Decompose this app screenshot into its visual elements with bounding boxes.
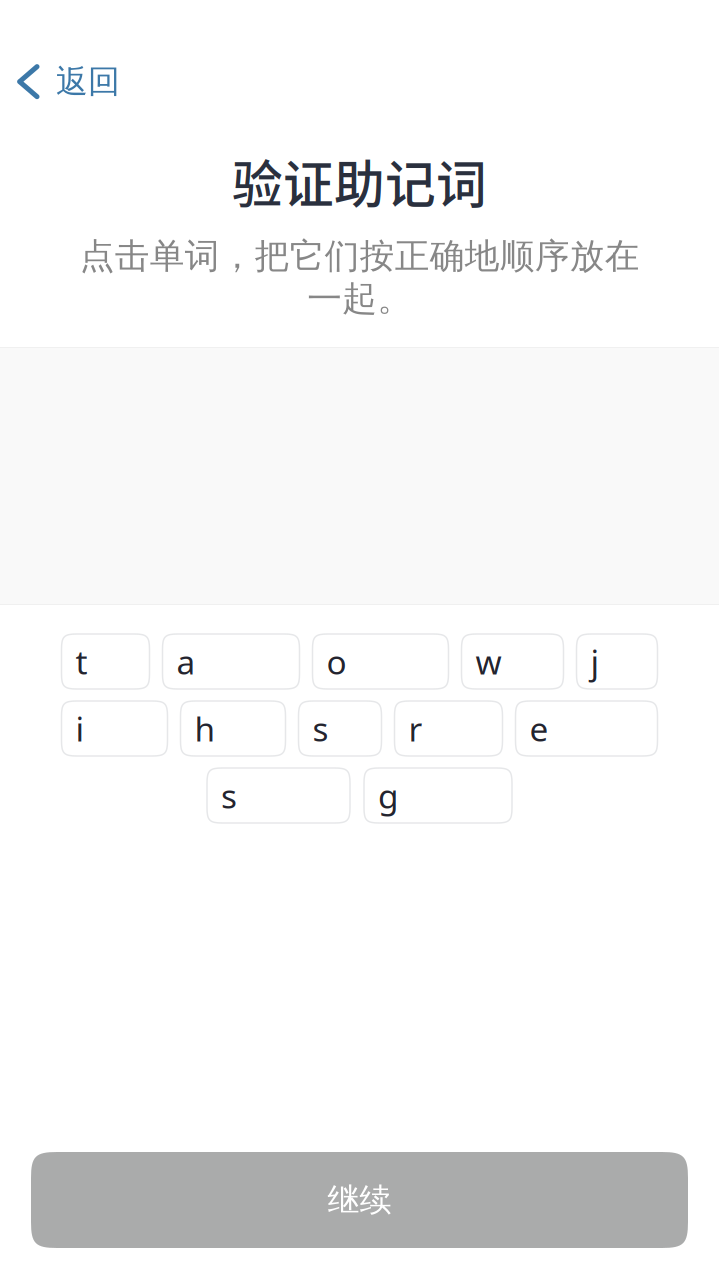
staticText: 验证助记词 [232, 145, 487, 217]
button[interactable]: h [180, 701, 285, 756]
button[interactable]: i [61, 701, 167, 756]
staticText: 返回 [56, 62, 120, 101]
staticText: w [475, 639, 501, 684]
button[interactable]: 返回 [0, 56, 134, 107]
staticText: g [378, 773, 399, 818]
staticText: i [75, 706, 84, 751]
button[interactable]: g [364, 768, 512, 823]
staticText: o [326, 639, 346, 684]
button[interactable]: r [394, 701, 502, 756]
button[interactable]: w [461, 634, 563, 689]
staticText: s [312, 706, 328, 751]
staticText: j [590, 639, 599, 684]
button[interactable]: o [312, 634, 448, 689]
button[interactable]: t [61, 634, 149, 689]
button[interactable]: s [207, 768, 350, 823]
button[interactable]: a [162, 634, 299, 689]
staticText: 继续 [327, 1180, 391, 1220]
button[interactable]: s [298, 701, 381, 756]
button[interactable]: e [515, 701, 657, 756]
staticText: e [529, 706, 548, 751]
staticText: r [408, 706, 422, 751]
staticText: a [176, 639, 195, 684]
button[interactable]: j [576, 634, 657, 689]
button[interactable]: 继续 [31, 1152, 688, 1248]
staticText: s [221, 773, 237, 818]
staticText: h [194, 706, 215, 751]
staticText: 点击单词，把它们按正确地顺序放在一起。 [79, 235, 639, 320]
staticText: t [75, 639, 87, 684]
